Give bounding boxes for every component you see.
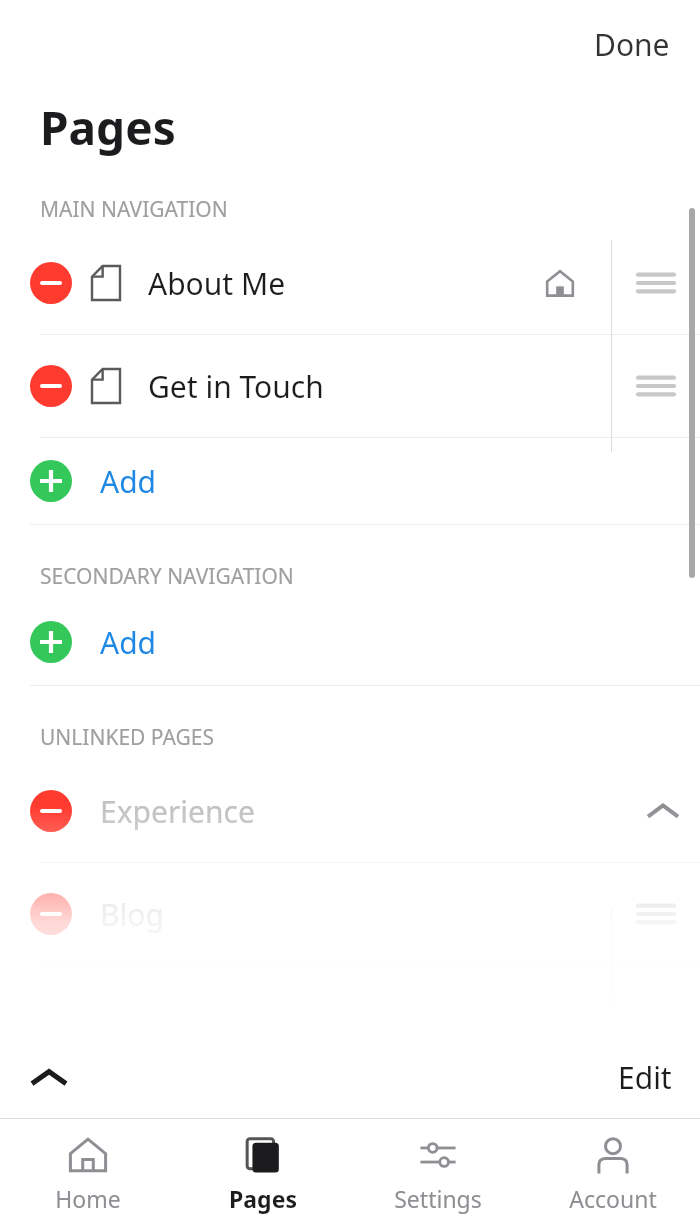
staticText: Pages [229,1183,297,1214]
staticText: About Me [148,263,286,304]
button[interactable]: Collapse [0,1050,98,1106]
button[interactable]: Settings [350,1119,525,1220]
button[interactable]: Remove [0,863,700,965]
button[interactable]: Remove [0,335,700,437]
staticText: Experience [100,791,255,832]
staticText: Home [55,1183,121,1214]
button[interactable]: Home page [536,261,584,305]
staticText: Settings [394,1183,482,1214]
staticText: SECONDARY NAVIGATION [40,562,294,591]
button[interactable]: Pages [175,1119,350,1220]
staticText: Add [100,461,157,502]
button[interactable]: Add [0,438,700,524]
staticText: Get in Touch [148,366,324,407]
button[interactable]: Remove [30,790,72,832]
button[interactable]: Collapse [634,787,692,835]
button[interactable]: Done [564,12,700,77]
button[interactable]: Add [0,599,700,685]
staticText: Pages [40,96,176,159]
button[interactable]: Remove [0,760,700,862]
button[interactable]: Home [0,1119,175,1220]
button[interactable]: Remove [0,232,700,334]
staticText: Add [100,622,157,663]
button[interactable]: Edit [590,1043,700,1112]
button[interactable]: Reorder [612,232,700,334]
staticText: Edit [618,1057,672,1098]
staticText: Blog [100,894,164,935]
staticText: Account [569,1183,657,1214]
button[interactable]: Remove [30,262,72,304]
staticText: Done [594,24,670,65]
staticText: MAIN NAVIGATION [40,195,228,224]
button[interactable]: Account [525,1119,700,1220]
button[interactable]: Remove [30,893,72,935]
button[interactable]: Reorder [612,335,700,437]
button[interactable]: Remove [30,365,72,407]
button[interactable]: Reorder [612,863,700,965]
staticText: UNLINKED PAGES [40,723,215,752]
